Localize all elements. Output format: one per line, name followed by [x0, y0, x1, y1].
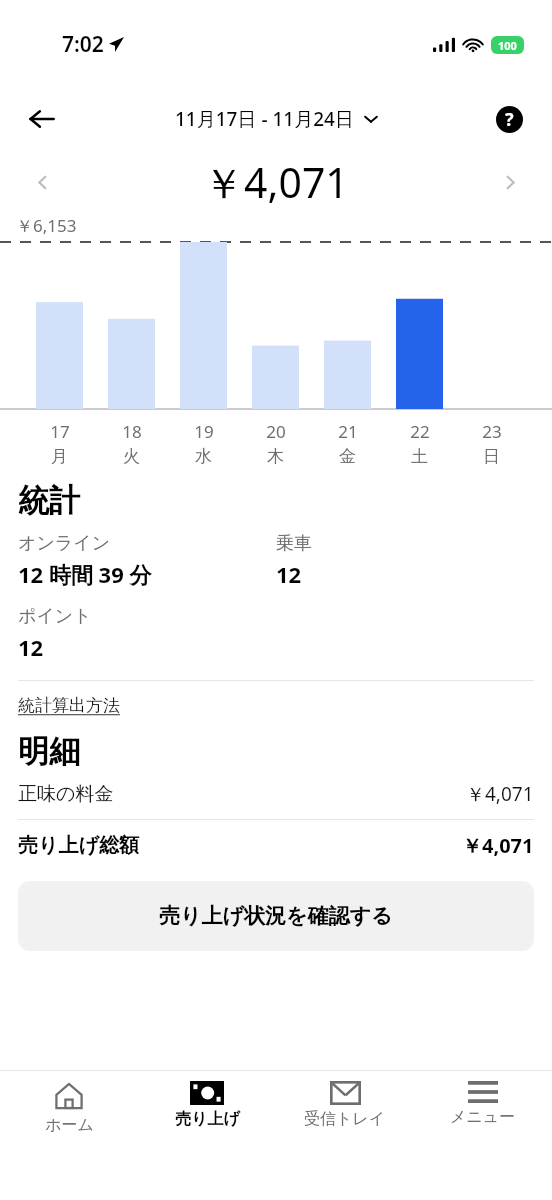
staticText: ￥6,153 [16, 214, 77, 237]
staticText: 火 [123, 446, 140, 467]
staticText: 売り上げ [175, 1109, 240, 1129]
staticText: 日 [483, 446, 500, 467]
staticText: 12 [18, 632, 44, 662]
button[interactable]: ホーム [0, 1071, 138, 1200]
staticText: メニュー [450, 1107, 516, 1127]
staticText: 22 [410, 420, 430, 443]
button[interactable]: 21 [324, 420, 371, 467]
staticText: ￥4,071 [203, 154, 349, 210]
staticText: 金 [339, 446, 356, 467]
staticText: 100 [498, 38, 517, 53]
staticText: 統計 [18, 481, 80, 520]
button[interactable]: 23 [468, 420, 515, 467]
staticText: 明細 [18, 732, 80, 771]
staticText: 21 [338, 420, 358, 443]
button[interactable]: 18 [108, 420, 155, 467]
staticText: 土 [411, 446, 428, 467]
staticText: ￥4,071 [466, 781, 534, 807]
staticText: ポイント [18, 605, 92, 628]
staticText: ホーム [45, 1115, 94, 1135]
staticText: 11月17日 - 11月24日 [175, 106, 354, 132]
button[interactable]: 22 [396, 420, 443, 467]
staticText: 19 [194, 420, 214, 443]
button[interactable]: 売り上げ [138, 1071, 276, 1200]
staticText: 受信トレイ [304, 1109, 386, 1129]
staticText: 売り上げ総額 [18, 833, 139, 858]
staticText: 乗車 [276, 532, 312, 555]
button[interactable]: Previous week [22, 162, 62, 202]
staticText: 18 [122, 420, 142, 443]
staticText: 水 [195, 446, 212, 467]
button[interactable]: Back [18, 95, 66, 143]
button[interactable]: 受信トレイ [276, 1071, 414, 1200]
button[interactable]: Help [486, 96, 532, 142]
button[interactable]: 11月17日 - 11月24日 [175, 106, 378, 132]
button[interactable]: メニュー [414, 1071, 552, 1200]
button[interactable]: Next week [490, 162, 530, 202]
button[interactable]: 売り上げ状況を確認する [18, 881, 534, 951]
staticText: 23 [482, 420, 502, 443]
staticText: 木 [267, 446, 284, 467]
button[interactable]: 17 [36, 420, 83, 467]
staticText: 20 [266, 420, 286, 443]
staticText: 12 [276, 559, 302, 589]
staticText: ￥4,071 [462, 832, 534, 859]
staticText: 正味の料金 [18, 782, 114, 806]
staticText: ? [505, 107, 514, 132]
staticText: 売り上げ状況を確認する [159, 903, 393, 929]
staticText: 月 [51, 446, 68, 467]
staticText: オンライン [18, 532, 111, 555]
button[interactable]: 19 [180, 420, 227, 467]
staticText: 17 [50, 420, 70, 443]
staticText: 7:02 [62, 30, 104, 59]
button[interactable]: 20 [252, 420, 299, 467]
staticText: 12 時間 39 分 [18, 559, 152, 589]
button[interactable]: 統計算出方法 [18, 695, 120, 716]
